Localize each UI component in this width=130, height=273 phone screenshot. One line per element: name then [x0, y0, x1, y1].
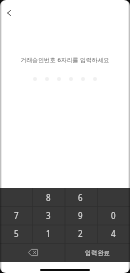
button[interactable]: 6 [64, 188, 97, 206]
staticText: 입력완료 [85, 249, 110, 257]
staticText: 0 [111, 210, 116, 221]
staticText: 3 [46, 210, 51, 221]
button[interactable]: 0 [97, 206, 130, 224]
button[interactable]: 9 [64, 206, 97, 224]
staticText: 1 [46, 228, 51, 239]
button[interactable]: 1 [32, 224, 64, 243]
staticText: 8 [46, 192, 51, 203]
button[interactable]: 5 [0, 224, 32, 243]
button[interactable]: 2 [64, 224, 97, 243]
button[interactable]: 입력완료 [65, 243, 130, 262]
button[interactable]: 8 [32, 188, 64, 206]
button[interactable]: 7 [0, 206, 32, 224]
button[interactable]: Back [0, 3, 19, 23]
button[interactable]: 3 [32, 206, 64, 224]
staticText: 2 [78, 228, 83, 239]
staticText: 거래승인번호 6자리를 입력하세요 [0, 56, 130, 64]
staticText: 7 [14, 210, 19, 221]
staticText: 9 [78, 210, 83, 221]
button[interactable]: Backspace [0, 243, 65, 262]
staticText: 6 [78, 192, 83, 203]
staticText: 4 [111, 228, 116, 239]
button[interactable]: 4 [97, 224, 130, 243]
staticText: 5 [14, 228, 19, 239]
